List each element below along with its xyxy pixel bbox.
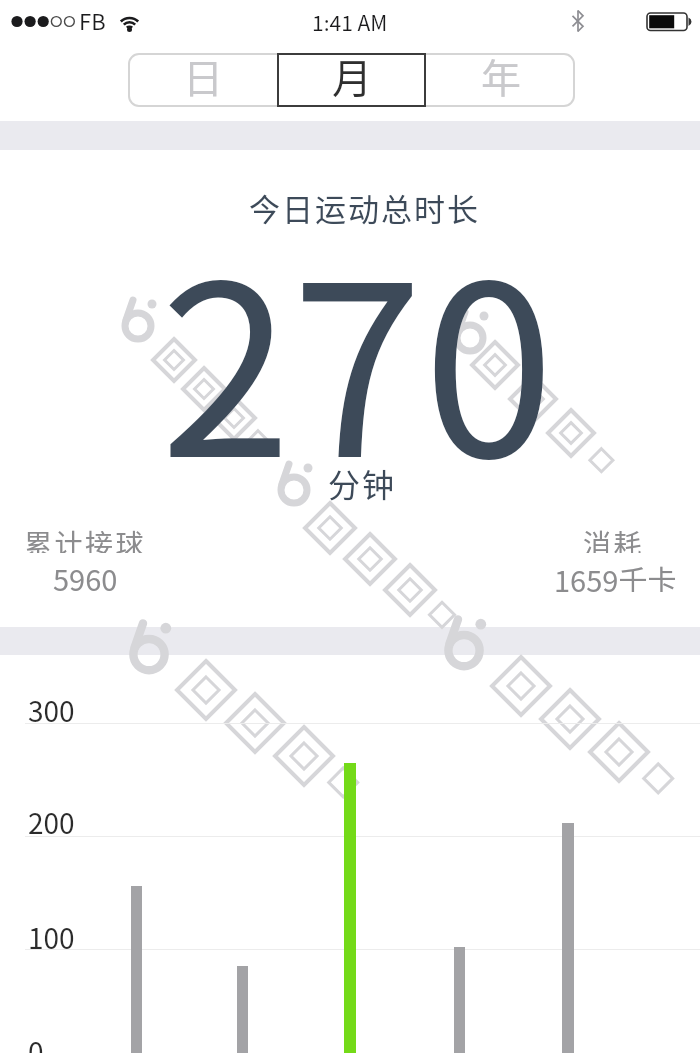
staticText: 0 xyxy=(28,1031,44,1053)
staticText: 100 xyxy=(28,917,75,949)
staticText: 今日运动总时长 xyxy=(249,185,480,229)
staticText: 日 xyxy=(183,47,223,101)
staticText: 分钟 xyxy=(328,460,397,504)
staticText: 消耗 xyxy=(583,523,645,553)
staticText: FB xyxy=(79,4,106,36)
staticText: 270 xyxy=(160,182,555,462)
button[interactable] xyxy=(426,53,575,107)
staticText: 1:41 AM xyxy=(312,7,388,37)
staticText: 累计接球 xyxy=(24,523,147,553)
staticText: 年 xyxy=(481,47,521,101)
button[interactable] xyxy=(277,53,426,107)
staticText: 300 xyxy=(28,690,75,722)
staticText: 月 xyxy=(332,47,372,101)
button[interactable] xyxy=(128,53,277,107)
staticText: 5960 xyxy=(53,557,118,591)
staticText: 1659千卡 xyxy=(554,558,677,592)
staticText: 200 xyxy=(28,802,75,834)
